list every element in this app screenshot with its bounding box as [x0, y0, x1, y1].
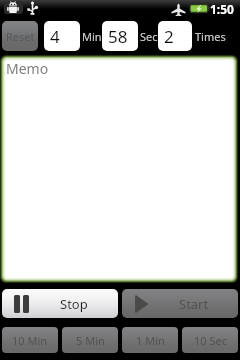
button[interactable]: 4 — [44, 21, 80, 51]
button[interactable]: Stop — [2, 289, 118, 318]
staticText: Memo — [6, 59, 49, 78]
button[interactable]: Memo — [0, 55, 238, 283]
button[interactable]: 1 Min — [122, 327, 178, 353]
button[interactable]: Reset — [2, 21, 38, 51]
button[interactable]: 58 — [102, 21, 138, 51]
staticText: 1:50 — [210, 1, 234, 17]
staticText: 10 Sec — [194, 333, 227, 348]
staticText: 10 Min — [12, 333, 48, 348]
staticText: 1 Min — [136, 333, 165, 348]
staticText: 2 — [164, 25, 174, 48]
staticText: Times — [195, 29, 226, 44]
button[interactable]: Start — [122, 289, 238, 318]
button[interactable]: 5 Min — [62, 327, 118, 353]
button[interactable]: 10 Min — [2, 327, 58, 353]
staticText: 4 — [50, 25, 60, 48]
staticText: 58 — [108, 25, 128, 48]
button[interactable]: 2 — [158, 21, 192, 51]
staticText: Stop — [60, 295, 88, 313]
staticText: Sec — [140, 29, 158, 44]
staticText: 5 Min — [76, 333, 105, 348]
button[interactable]: 10 Sec — [182, 327, 238, 353]
staticText: Min — [82, 29, 102, 44]
staticText: Start — [179, 295, 209, 313]
staticText: Reset — [6, 29, 35, 44]
